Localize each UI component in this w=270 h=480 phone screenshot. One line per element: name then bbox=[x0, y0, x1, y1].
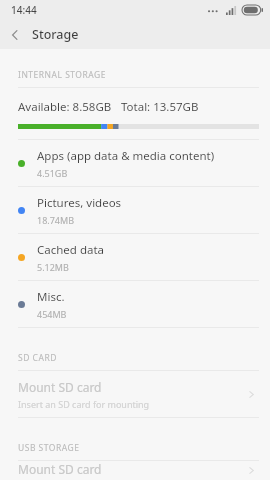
button[interactable]: Mount SD card bbox=[0, 461, 270, 480]
button[interactable]: Pictures, videos bbox=[0, 187, 270, 233]
staticText: Misc. bbox=[37, 289, 65, 305]
staticText: Pictures, videos bbox=[37, 195, 122, 211]
staticText: Mount SD card bbox=[18, 461, 102, 477]
button[interactable]: Apps (app data & media content) bbox=[0, 140, 270, 186]
staticText: Cached data bbox=[37, 242, 105, 258]
staticText: USB STORAGE bbox=[18, 442, 80, 454]
staticText: Storage bbox=[32, 26, 79, 43]
staticText: 4.51GB bbox=[37, 167, 68, 179]
staticText: Insert an SD card for mounting bbox=[18, 398, 150, 410]
staticText: Mount SD card bbox=[18, 379, 102, 395]
button[interactable]: Misc. bbox=[0, 281, 270, 327]
staticText: SD CARD bbox=[18, 352, 57, 364]
staticText: 14:44 bbox=[11, 3, 37, 17]
button[interactable]: Back bbox=[0, 20, 30, 49]
button[interactable]: Cached data bbox=[0, 234, 270, 280]
staticText: Available: 8.58GB bbox=[18, 99, 112, 115]
staticText: INTERNAL STORAGE bbox=[18, 69, 106, 81]
staticText: Apps (app data & media content) bbox=[37, 148, 215, 164]
button[interactable]: Mount SD card bbox=[0, 371, 270, 417]
staticText: 454MB bbox=[37, 308, 67, 320]
staticText: Total: 13.57GB bbox=[121, 99, 199, 115]
staticText: 5.12MB bbox=[37, 261, 69, 273]
staticText: 18.74MB bbox=[37, 214, 75, 226]
